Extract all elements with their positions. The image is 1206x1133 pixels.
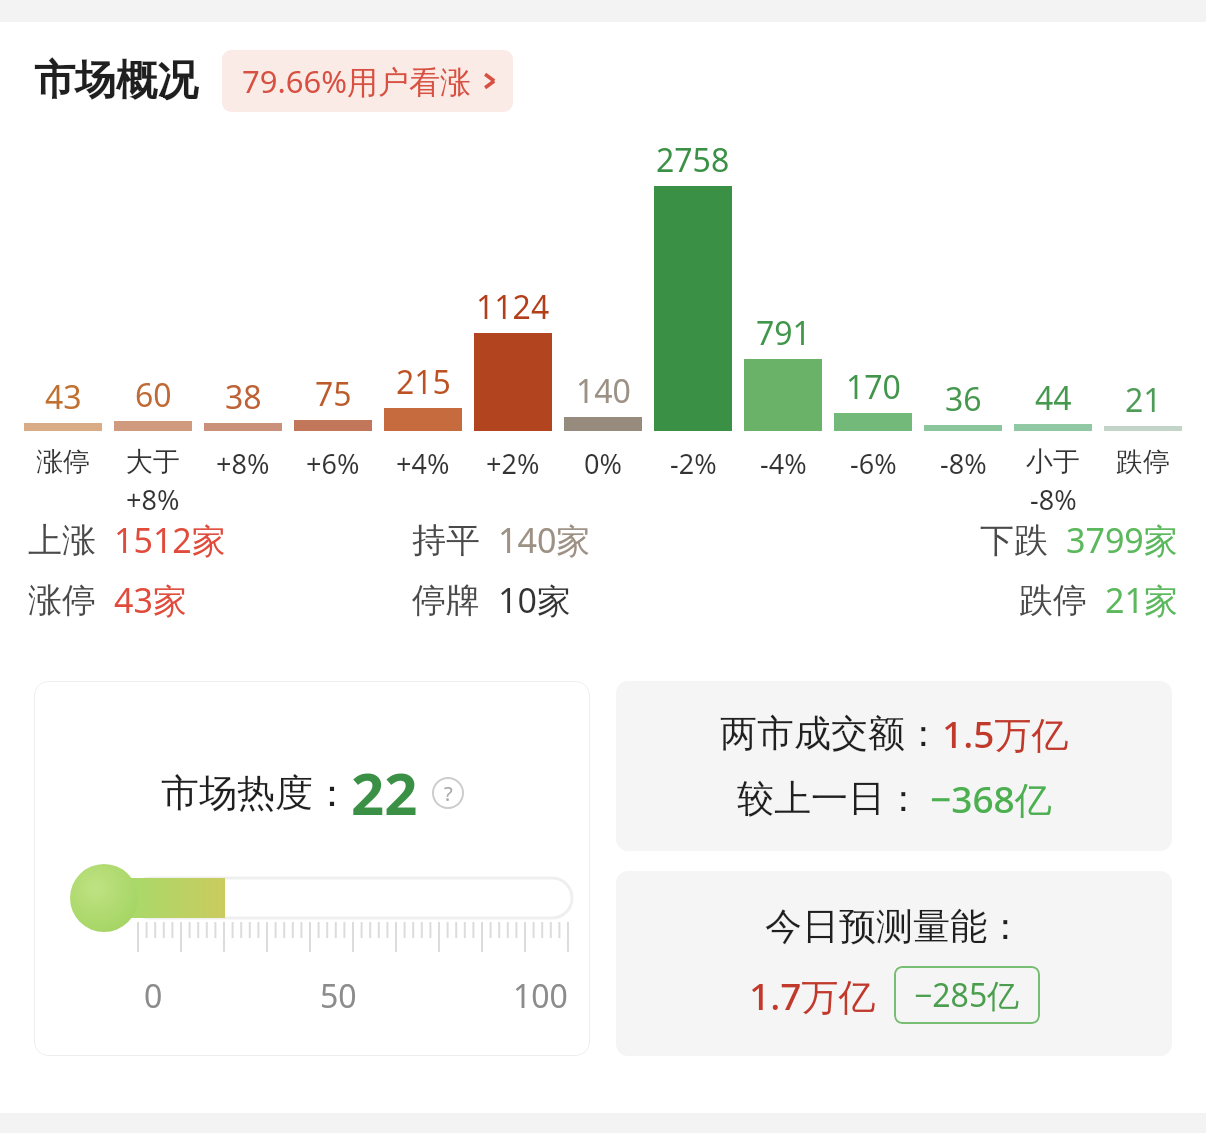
staticText: 140 [576, 369, 631, 413]
staticText: 38 [225, 375, 262, 419]
staticText: 36 [945, 377, 982, 421]
staticText: 43 [45, 375, 82, 419]
button[interactable]: 两市成交额： [616, 681, 1172, 851]
staticText: 2758 [656, 138, 730, 182]
staticText: 持平 [412, 519, 480, 562]
button[interactable]: 今日预测量能： [616, 871, 1172, 1056]
staticText: 跌停 [1019, 579, 1087, 622]
staticText: 21家 [1105, 577, 1178, 623]
staticText: 3799家 [1066, 517, 1178, 563]
staticText: 100 [513, 974, 568, 1018]
staticText: 下跌 [980, 519, 1048, 562]
staticText: 1.5万亿 [942, 708, 1069, 759]
staticText: +4% [396, 445, 450, 482]
staticText: −285亿 [914, 973, 1020, 1017]
staticText: -2% [670, 445, 717, 482]
staticText: 50 [320, 974, 357, 1018]
staticText: 涨停 [36, 445, 90, 479]
staticText: 44 [1035, 376, 1072, 420]
staticText: -8% [940, 445, 987, 482]
staticText: 今日预测量能： [765, 903, 1024, 950]
button[interactable]: 市场热度： [34, 681, 590, 1056]
staticText: 0% [584, 445, 622, 482]
staticText: 小于 [1026, 445, 1080, 479]
staticText: 涨停 [28, 579, 96, 622]
button[interactable]: 79.66%用户看涨 [222, 50, 513, 112]
staticText: 140家 [498, 517, 591, 563]
staticText: 1512家 [114, 517, 226, 563]
staticText: 22 [351, 753, 418, 832]
staticText: ? [444, 780, 453, 807]
staticText: 停牌 [412, 579, 480, 622]
staticText: 215 [396, 360, 451, 404]
staticText: 0 [144, 974, 163, 1018]
staticText: -4% [760, 445, 807, 482]
staticText: 170 [846, 365, 901, 409]
staticText: 1.7万亿 [749, 970, 876, 1021]
staticText: 两市成交额： [720, 710, 942, 757]
button[interactable]: 帮助 [432, 777, 464, 809]
staticText: 市场热度： [161, 769, 351, 817]
staticText: +8% [216, 445, 270, 482]
staticText: 较上一日： [737, 775, 922, 822]
staticText: 75 [315, 372, 352, 416]
staticText: 791 [756, 311, 811, 355]
staticText: 大于 [126, 445, 180, 479]
staticText: 21 [1125, 378, 1162, 422]
staticText: 60 [135, 373, 172, 417]
staticText: +8% [126, 481, 180, 517]
staticText: −368亿 [930, 773, 1052, 824]
staticText: 10家 [498, 577, 571, 623]
staticText: 1124 [476, 285, 550, 329]
staticText: 跌停 [1116, 445, 1170, 479]
staticText: +2% [486, 445, 540, 482]
staticText: 43家 [114, 577, 187, 623]
staticText: +6% [306, 445, 360, 482]
staticText: 市场概况 [34, 55, 198, 107]
staticText: -6% [850, 445, 897, 482]
staticText: -8% [1030, 481, 1077, 517]
staticText: 上涨 [28, 519, 96, 562]
staticText: 79.66%用户看涨 [242, 60, 471, 102]
